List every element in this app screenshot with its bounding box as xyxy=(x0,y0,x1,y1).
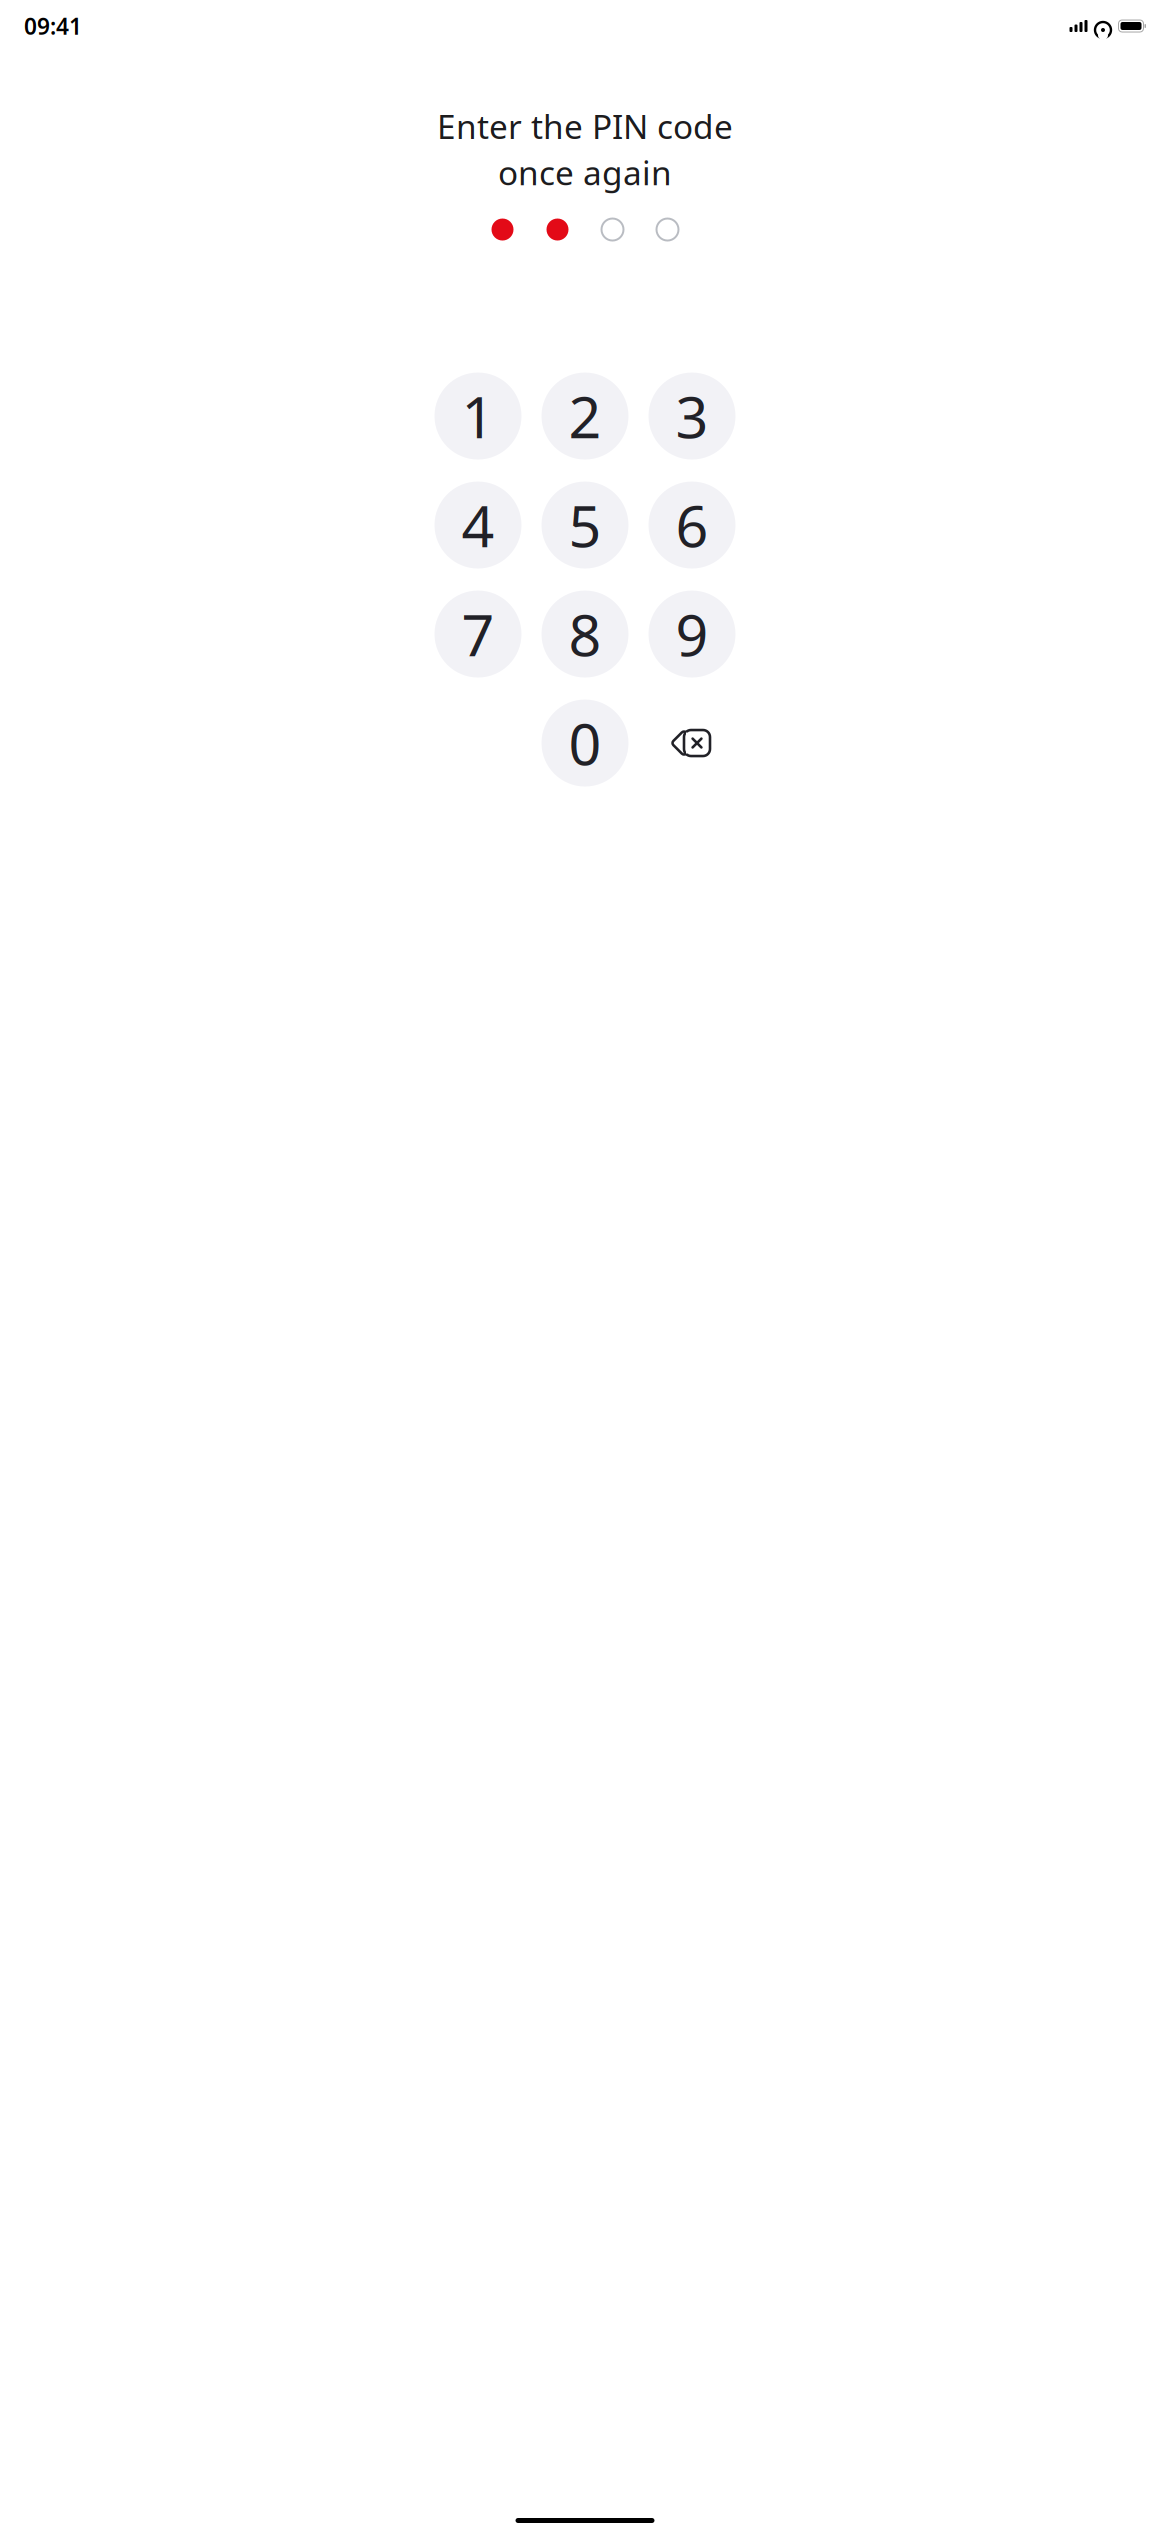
staticText: 2 xyxy=(568,378,601,454)
button[interactable]: 5 xyxy=(541,481,628,568)
staticText: 8 xyxy=(568,596,601,672)
staticText: 09:41 xyxy=(24,11,82,41)
staticText: 1 xyxy=(461,378,494,454)
staticText: 4 xyxy=(461,487,494,563)
button[interactable]: 7 xyxy=(434,590,521,677)
staticText: once again xyxy=(498,150,672,195)
button[interactable]: 3 xyxy=(648,372,735,459)
button[interactable]: 9 xyxy=(648,590,735,677)
staticText: 9 xyxy=(675,596,708,672)
button[interactable]: 6 xyxy=(648,481,735,568)
button[interactable]: 8 xyxy=(541,590,628,677)
button[interactable]: 2 xyxy=(541,372,628,459)
staticText: Enter the PIN code xyxy=(437,104,733,148)
button[interactable]: 1 xyxy=(434,372,521,459)
button[interactable]: 0 xyxy=(541,699,628,786)
staticText: 0 xyxy=(568,705,601,781)
staticText: 5 xyxy=(568,487,601,563)
staticText: 3 xyxy=(675,378,708,454)
button[interactable]: Delete xyxy=(648,699,735,786)
staticText: 7 xyxy=(461,596,494,672)
button[interactable]: 4 xyxy=(434,481,521,568)
staticText: 6 xyxy=(675,487,708,563)
